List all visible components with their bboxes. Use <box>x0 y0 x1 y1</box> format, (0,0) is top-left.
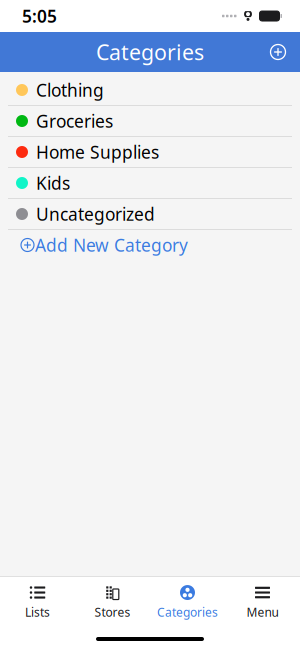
button[interactable]: Menu <box>225 582 300 622</box>
staticText: Home Supplies <box>36 140 159 163</box>
staticText: Uncategorized <box>36 202 155 225</box>
staticText: Categories <box>157 604 218 620</box>
button[interactable]: Uncategorized <box>0 199 300 230</box>
button[interactable]: Add Category <box>261 32 295 72</box>
button[interactable]: Add New Category <box>0 230 300 260</box>
staticText: Categories <box>96 38 204 66</box>
button[interactable]: Stores <box>75 582 150 622</box>
staticText: Add New Category <box>35 233 188 256</box>
button[interactable]: Categories <box>150 582 225 622</box>
button[interactable]: Lists <box>0 582 75 622</box>
button[interactable]: Home Supplies <box>0 137 300 168</box>
button[interactable]: Kids <box>0 168 300 199</box>
staticText: Lists <box>25 604 50 620</box>
staticText: Stores <box>94 604 130 620</box>
button[interactable]: Clothing <box>0 75 300 106</box>
staticText: Groceries <box>36 109 113 132</box>
staticText: 5:05 <box>22 4 57 27</box>
button[interactable]: Groceries <box>0 106 300 137</box>
staticText: Menu <box>246 604 278 620</box>
staticText: Kids <box>36 171 70 194</box>
staticText: Clothing <box>36 78 104 101</box>
